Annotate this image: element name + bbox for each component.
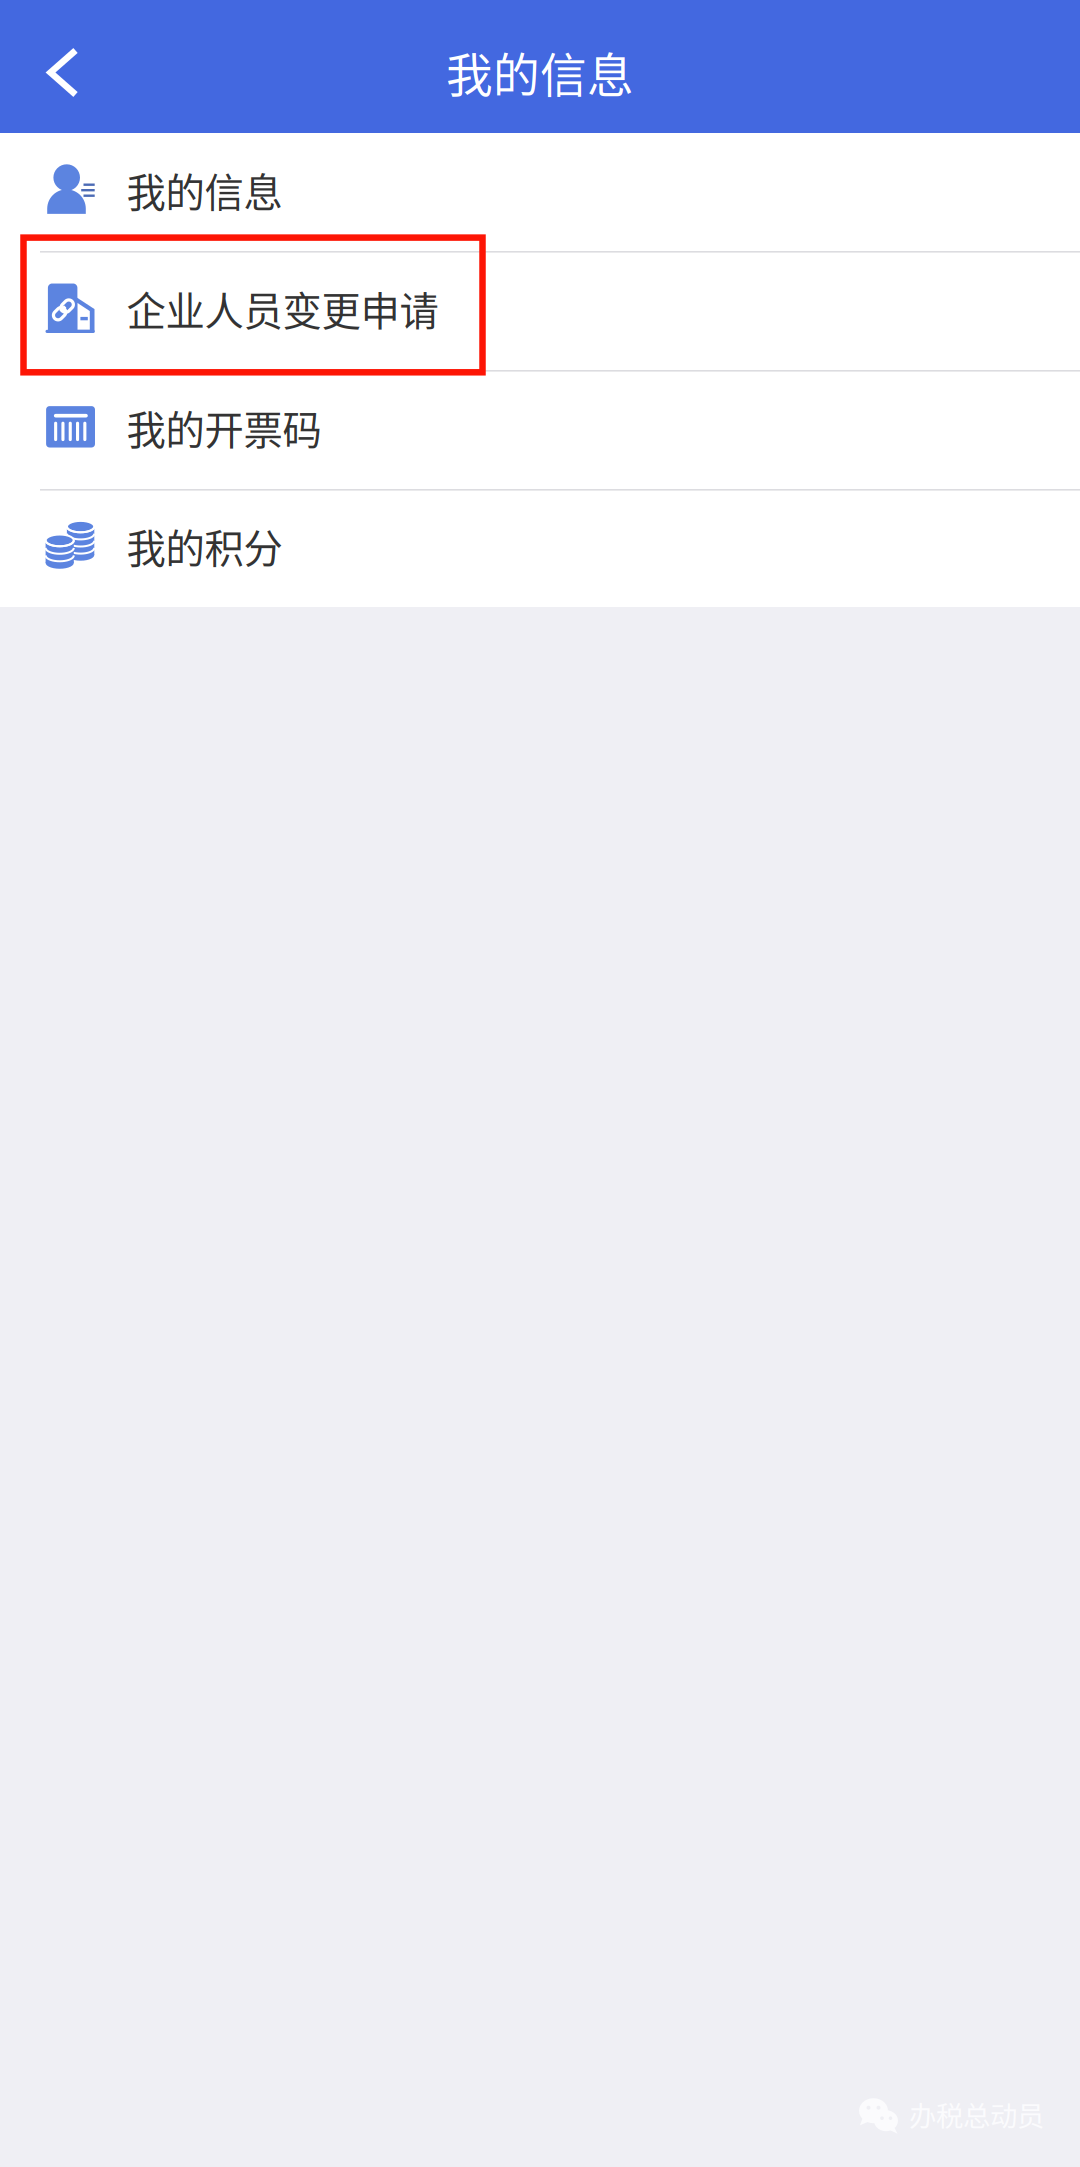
staticText: 我的信息 (126, 162, 282, 219)
staticText: 办税总动员 (909, 2094, 1044, 2134)
button[interactable]: 我的信息 (0, 133, 1080, 251)
button[interactable]: 我的积分 (0, 489, 1080, 607)
staticText: 我的开票码 (126, 399, 321, 456)
button[interactable]: Back (0, 4, 120, 128)
staticText: 我的信息 (446, 38, 634, 106)
button[interactable]: 我的开票码 (0, 370, 1080, 489)
staticText: 我的积分 (126, 518, 282, 575)
staticText: 企业人员变更申请 (126, 280, 438, 337)
button[interactable]: 企业人员变更申请 (0, 251, 1080, 370)
